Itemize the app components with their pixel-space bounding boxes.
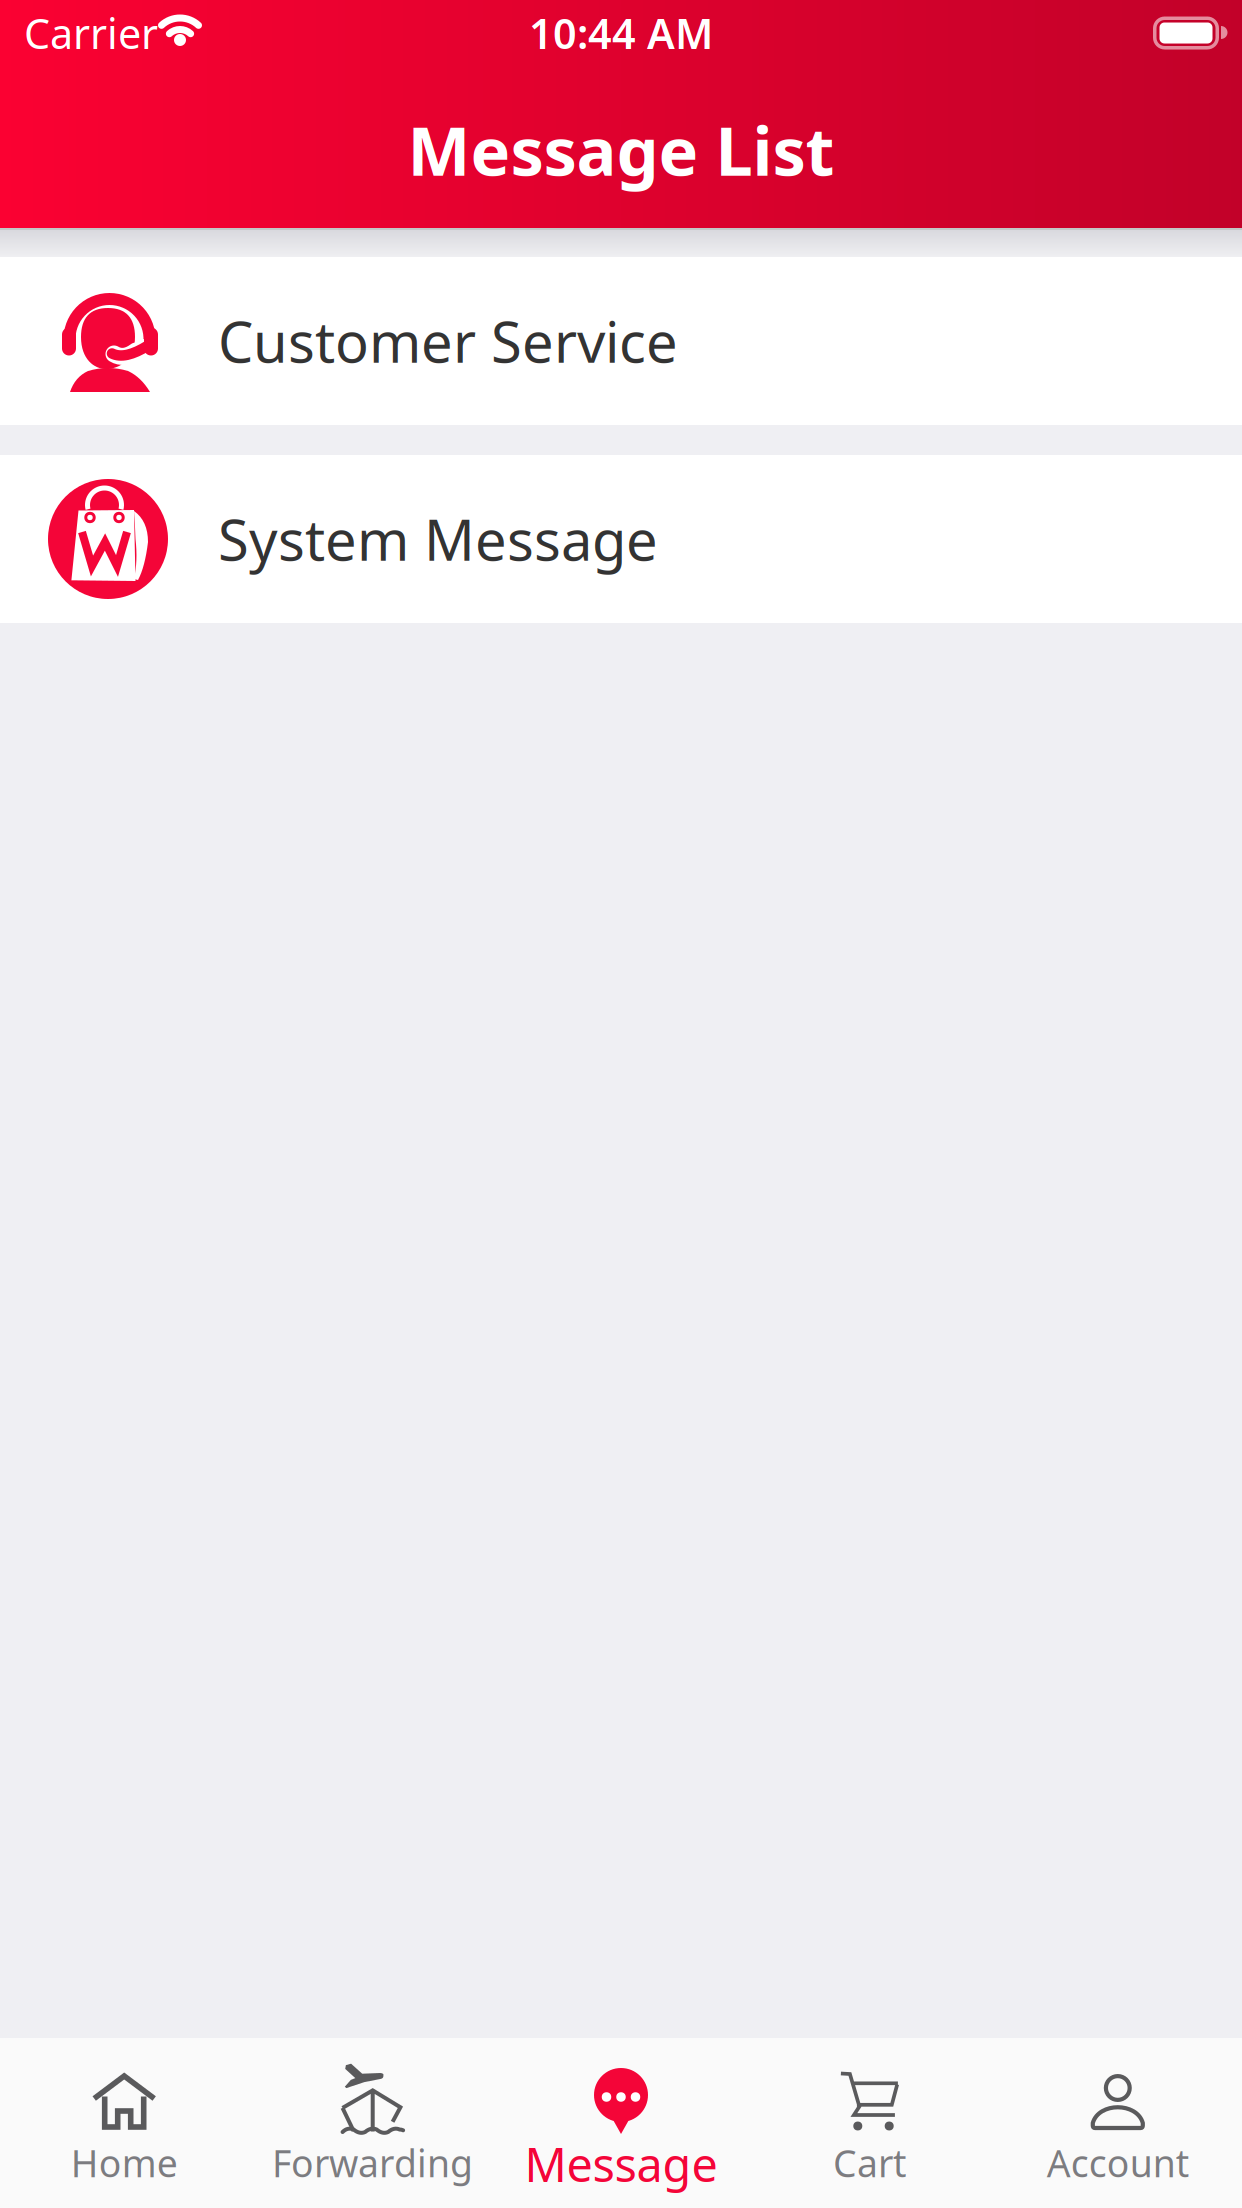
button[interactable]: Forwarding (248, 2038, 497, 2208)
staticText: Carrier (24, 6, 158, 60)
button[interactable]: Account (994, 2038, 1242, 2208)
staticText: System Message (218, 502, 658, 576)
staticText: Cart (833, 2138, 906, 2188)
staticText: Account (1047, 2138, 1189, 2188)
staticText: Forwarding (272, 2138, 473, 2188)
staticText: Customer Service (218, 304, 678, 378)
staticText: Message List (407, 106, 834, 194)
button[interactable]: Cart (745, 2038, 994, 2208)
button[interactable]: Customer Service (0, 257, 1242, 425)
button[interactable]: System Message (0, 455, 1242, 623)
button[interactable]: Message (497, 2038, 745, 2208)
staticText: Home (71, 2138, 178, 2188)
staticText: 10:44 AM (529, 6, 713, 60)
staticText: Message (524, 2133, 717, 2195)
button[interactable]: Home (0, 2038, 248, 2208)
